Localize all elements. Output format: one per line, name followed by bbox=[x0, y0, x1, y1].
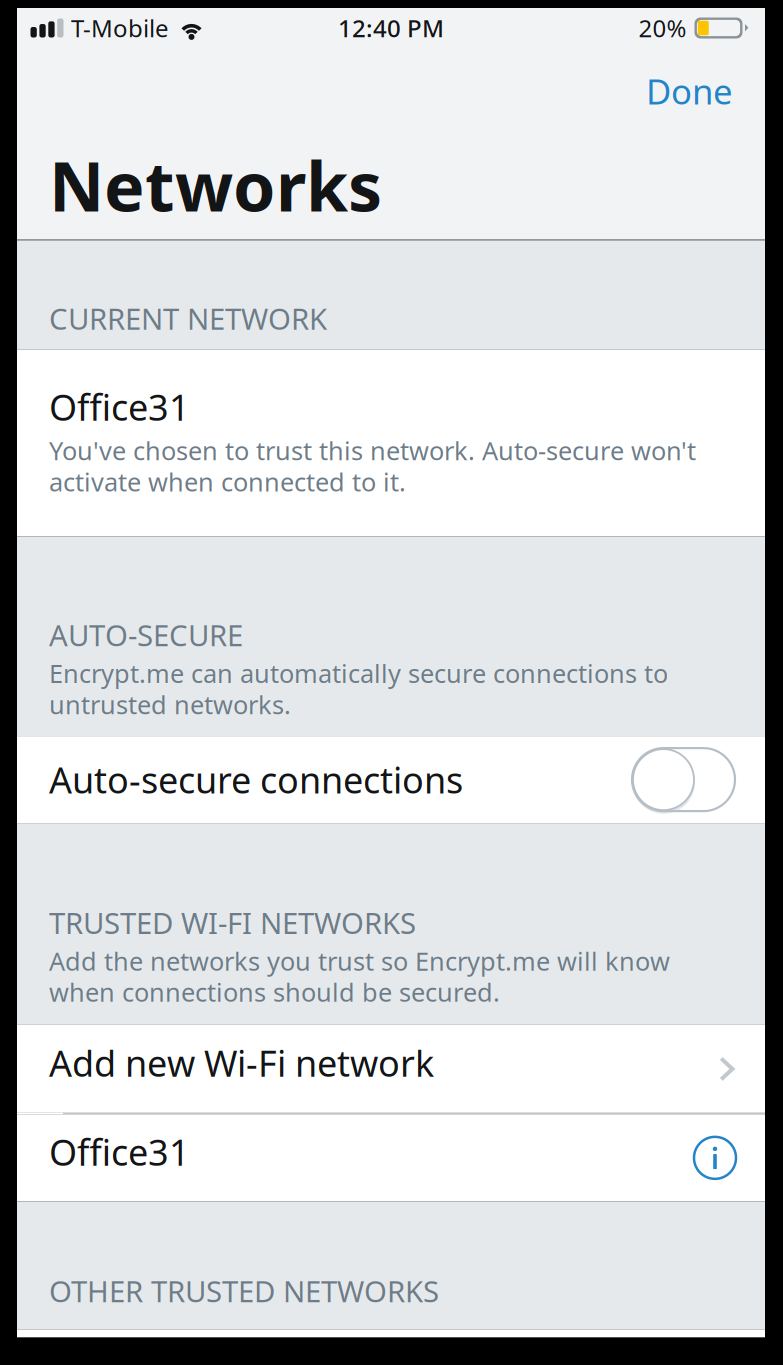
staticText: TRUSTED WI-FI NETWORKS bbox=[49, 903, 416, 942]
staticText: Office31 bbox=[49, 383, 190, 431]
staticText: T-Mobile bbox=[71, 12, 169, 44]
staticText: untrusted networks. bbox=[49, 687, 291, 721]
staticText: Add new Wi-Fi network bbox=[49, 1039, 434, 1087]
staticText: Office31 bbox=[49, 1128, 190, 1176]
button[interactable]: Done bbox=[616, 48, 765, 128]
button[interactable]: Office31 bbox=[17, 1114, 765, 1201]
staticText: Done bbox=[646, 68, 733, 114]
staticText: Add the networks you trust so Encrypt.me… bbox=[49, 944, 670, 978]
staticText: activate when connected to it. bbox=[49, 465, 406, 498]
staticText: CURRENT NETWORK bbox=[49, 299, 327, 338]
button[interactable]: Add new Wi-Fi network bbox=[17, 1025, 765, 1113]
staticText: 12:40 PM bbox=[338, 12, 444, 44]
staticText: 20% bbox=[638, 12, 686, 44]
staticText: AUTO-SECURE bbox=[49, 615, 243, 654]
staticText: Encrypt.me can automatically secure conn… bbox=[49, 656, 668, 690]
staticText: OTHER TRUSTED NETWORKS bbox=[49, 1271, 439, 1310]
staticText: You've chosen to trust this network. Aut… bbox=[49, 434, 696, 467]
staticText: Auto-secure connections bbox=[49, 756, 463, 803]
staticText: Networks bbox=[49, 140, 382, 230]
button[interactable]: Auto-secure connections bbox=[17, 736, 765, 823]
staticText: when connections should be secured. bbox=[49, 975, 500, 1009]
